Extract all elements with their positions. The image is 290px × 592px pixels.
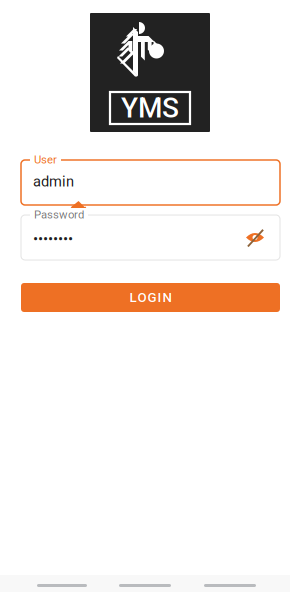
- button[interactable]: Show password: [235, 215, 275, 260]
- staticText: User: [34, 153, 57, 166]
- staticText: LOGIN: [129, 290, 171, 305]
- staticText: admin: [33, 173, 74, 190]
- button[interactable]: LOGIN: [21, 283, 280, 312]
- staticText: YMS: [121, 92, 179, 124]
- staticText: ••••••••: [33, 230, 73, 248]
- staticText: Password: [34, 208, 84, 221]
